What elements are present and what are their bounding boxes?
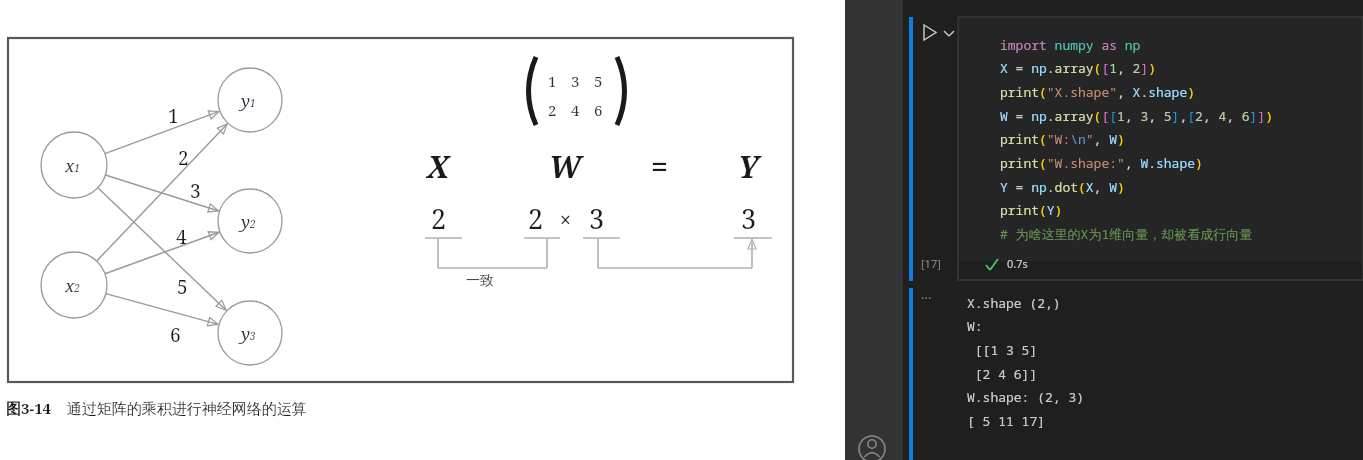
staticText: x2 bbox=[65, 274, 80, 297]
staticText: 3 bbox=[571, 71, 580, 91]
staticText: [ 5 11 17] bbox=[967, 412, 1046, 430]
staticText: X = np.array([1, 2]) bbox=[1000, 59, 1157, 77]
staticText: 4 bbox=[571, 100, 580, 120]
button[interactable]: Account bbox=[857, 434, 887, 460]
staticText: Y = np.dot(X, W) bbox=[1000, 178, 1125, 196]
staticText: X bbox=[427, 146, 449, 187]
staticText: 3 bbox=[190, 178, 201, 204]
staticText: y1 bbox=[241, 89, 256, 112]
staticText: y3 bbox=[241, 322, 256, 345]
staticText: 6 bbox=[170, 322, 181, 348]
staticText: [2 4 6]] bbox=[967, 365, 1038, 383]
staticText: 2 bbox=[431, 200, 447, 237]
staticText: W.shape: (2, 3) bbox=[967, 388, 1085, 406]
staticText: 图3-14 通过矩阵的乘积进行神经网络的运算 bbox=[6, 398, 307, 418]
staticText: 3 bbox=[589, 200, 605, 237]
button[interactable]: Run cell bbox=[918, 21, 942, 45]
staticText: W = np.array([[1, 3, 5],[2, 4, 6]]) bbox=[1000, 107, 1274, 125]
staticText: ··· bbox=[921, 289, 932, 307]
staticText: W bbox=[549, 146, 582, 187]
staticText: print(Y) bbox=[1000, 201, 1063, 219]
staticText: 4 bbox=[176, 224, 187, 250]
staticText: Y bbox=[738, 146, 759, 187]
staticText: 5 bbox=[177, 274, 188, 300]
staticText: [[1 3 5] bbox=[967, 341, 1038, 359]
staticText: 2 bbox=[178, 145, 189, 171]
staticText: 2 bbox=[548, 100, 557, 120]
staticText: 1 bbox=[168, 103, 179, 129]
staticText: import numpy as np bbox=[1000, 36, 1141, 54]
staticText: = bbox=[651, 146, 668, 187]
staticText: 1 bbox=[548, 71, 557, 91]
staticText: W: bbox=[967, 317, 983, 335]
staticText: 2 bbox=[528, 200, 544, 237]
staticText: x1 bbox=[65, 154, 80, 177]
staticText: X.shape (2,) bbox=[967, 294, 1061, 312]
staticText: [17] bbox=[921, 256, 941, 271]
staticText: 5 bbox=[594, 71, 603, 91]
staticText: print("W:\n", W) bbox=[1000, 130, 1125, 148]
staticText: 3 bbox=[741, 200, 757, 237]
staticText: print("X.shape", X.shape) bbox=[1000, 83, 1196, 101]
staticText: × bbox=[560, 207, 571, 233]
staticText: 6 bbox=[594, 100, 603, 120]
staticText: # 为啥这里的X为1维向量，却被看成行向量 bbox=[1000, 225, 1253, 243]
button[interactable]: More actions bbox=[941, 23, 959, 41]
staticText: print("W.shape:", W.shape) bbox=[1000, 154, 1203, 172]
staticText: 一致 bbox=[466, 272, 494, 290]
staticText: y2 bbox=[241, 210, 256, 233]
staticText: 0.7s bbox=[1007, 256, 1028, 271]
